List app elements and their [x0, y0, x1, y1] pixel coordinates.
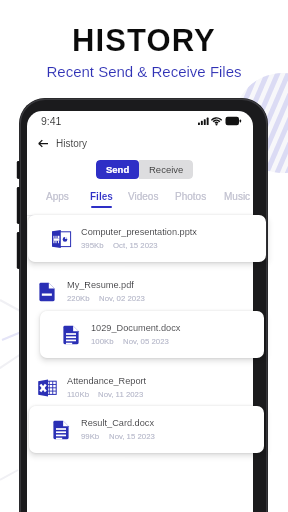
button[interactable]: Result_Card.docx: [51, 406, 264, 453]
button[interactable]: Receive: [139, 160, 193, 179]
button[interactable]: Attendance_Report: [37, 364, 253, 411]
staticText: Nov, 15 2023: [109, 432, 155, 441]
staticText: Nov, 11 2023: [98, 390, 144, 399]
staticText: Photos: [175, 191, 207, 202]
button[interactable]: Apps: [33, 191, 81, 211]
button[interactable]: Music: [211, 191, 253, 211]
staticText: 99Kb: [81, 432, 100, 441]
button[interactable]: My_Resume.pdf: [37, 268, 253, 315]
staticText: My_Resume.pdf: [67, 280, 134, 290]
staticText: Computer_presentation.pptx: [81, 227, 197, 237]
staticText: 110Kb: [67, 390, 89, 399]
staticText: Apps: [46, 191, 69, 202]
button[interactable]: Files: [87, 191, 116, 211]
staticText: 100Kb: [91, 337, 114, 346]
staticText: 220Kb: [67, 294, 90, 303]
button[interactable]: Back: [38, 134, 54, 152]
staticText: Result_Card.docx: [81, 418, 155, 428]
staticText: Nov, 05 2023: [123, 337, 169, 346]
button[interactable]: Send: [96, 160, 139, 179]
staticText: Attendance_Report: [67, 376, 147, 386]
button[interactable]: Photos: [171, 191, 211, 211]
staticText: Recent Send & Receive Files: [0, 63, 288, 80]
staticText: History: [56, 138, 88, 149]
staticText: Oct, 15 2023: [113, 241, 158, 250]
button[interactable]: Computer_presentation.pptx: [51, 215, 266, 262]
staticText: HISTORY: [0, 23, 288, 58]
staticText: Files: [90, 191, 113, 202]
staticText: 9:41: [41, 115, 62, 127]
button[interactable]: Videos: [116, 191, 171, 211]
staticText: Receive: [149, 164, 184, 175]
button[interactable]: 1029_Document.docx: [61, 311, 264, 358]
staticText: 395Kb: [81, 241, 104, 250]
staticText: Send: [106, 164, 130, 175]
staticText: Nov, 02 2023: [99, 294, 145, 303]
staticText: 1029_Document.docx: [91, 323, 181, 333]
staticText: Videos: [128, 191, 159, 202]
staticText: Music: [224, 191, 251, 202]
